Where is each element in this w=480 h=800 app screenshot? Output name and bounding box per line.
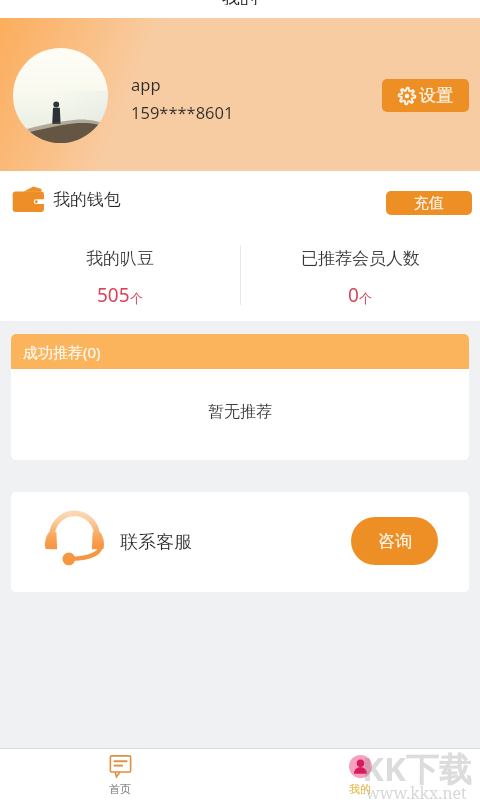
- button[interactable]: 已推荐会员人数: [240, 244, 480, 312]
- staticText: 已推荐会员人数: [301, 248, 420, 269]
- staticText: 个: [359, 290, 372, 306]
- button[interactable]: 我的: [240, 749, 480, 800]
- staticText: 我的: [222, 0, 258, 5]
- other: 首页: [109, 755, 132, 778]
- staticText: 成功推荐(0): [23, 342, 101, 362]
- button[interactable]: 充值: [386, 191, 472, 215]
- button[interactable]: Avatar: [13, 48, 108, 143]
- button[interactable]: 咨询: [351, 517, 438, 565]
- staticText: 联系客服: [120, 531, 192, 554]
- staticText: www.kkx.net: [366, 782, 467, 800]
- staticText: 我的钱包: [53, 189, 121, 210]
- staticText: 设置: [419, 85, 453, 106]
- staticText: app: [131, 73, 161, 95]
- staticText: 首页: [109, 782, 131, 796]
- staticText: 505: [97, 282, 130, 308]
- staticText: 159****8601: [131, 101, 234, 123]
- staticText: 暂无推荐: [208, 402, 272, 422]
- button[interactable]: 我的叭豆: [0, 244, 240, 312]
- button[interactable]: 首页: [0, 749, 240, 800]
- button[interactable]: 我的钱包: [12, 186, 121, 213]
- staticText: 我的: [349, 782, 371, 796]
- staticText: KK下载: [362, 746, 472, 791]
- staticText: 0: [348, 282, 359, 308]
- staticText: 充值: [414, 194, 444, 213]
- other: 我的: [349, 755, 372, 778]
- staticText: 个: [130, 290, 143, 306]
- button[interactable]: 设置: [382, 79, 469, 112]
- staticText: 咨询: [378, 531, 412, 552]
- staticText: 我的叭豆: [86, 248, 154, 269]
- button[interactable]: 联系客服: [11, 492, 469, 592]
